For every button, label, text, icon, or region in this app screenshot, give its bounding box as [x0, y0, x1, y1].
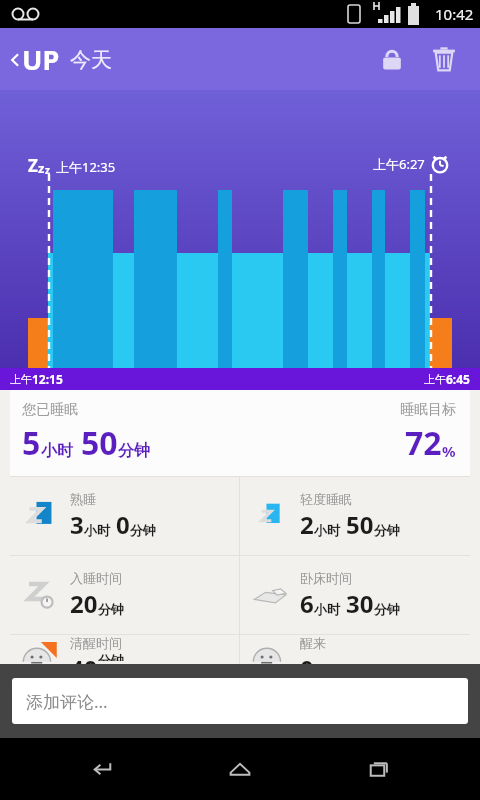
button[interactable]: Recents [343, 738, 413, 800]
staticText: UP [22, 41, 60, 78]
staticText: 72 [405, 421, 442, 465]
staticText: 上午 [424, 372, 446, 386]
button[interactable]: 熟睡 [10, 477, 239, 555]
staticText: 分钟 [130, 522, 156, 538]
button[interactable]: 清醒时间 [10, 635, 239, 664]
staticText: 分钟 [374, 522, 400, 538]
button[interactable]: 添加评论... [12, 678, 468, 724]
staticText: 分钟 [98, 652, 124, 661]
staticText: 卧床时间 [300, 570, 352, 586]
staticText: 0 [300, 652, 314, 664]
staticText: 40 [70, 652, 98, 664]
button[interactable]: 卧床时间 [240, 556, 470, 634]
staticText: z [38, 159, 45, 177]
staticText: 小时 [314, 601, 340, 617]
staticText: 小时 [84, 522, 110, 538]
staticText: 睡眠目标 [400, 401, 456, 419]
staticText: 6:45 [446, 371, 470, 387]
staticText: 熟睡 [70, 491, 96, 507]
staticText: 清醒时间 [70, 635, 122, 651]
button[interactable]: 您已睡眠 [10, 390, 470, 476]
staticText: 20 [70, 587, 98, 620]
staticText: 10:42 [435, 4, 474, 24]
staticText: 分钟 [118, 441, 150, 461]
staticText: 分钟 [374, 601, 400, 617]
staticText: 3 [70, 508, 84, 541]
button[interactable]: Back [68, 738, 138, 800]
staticText: 50 [81, 421, 118, 465]
staticText: z [45, 163, 50, 177]
staticText: 上午6:27 [373, 155, 425, 173]
staticText: 小时 [314, 522, 340, 538]
staticText: 上午 [10, 372, 32, 386]
button[interactable]: UP [0, 41, 120, 78]
staticText: 6 [300, 587, 314, 620]
staticText: Z [28, 154, 38, 177]
staticText: 12:15 [32, 371, 63, 387]
staticText: 小时 [41, 441, 73, 461]
staticText: 2 [300, 508, 314, 541]
button[interactable]: 醒来 [240, 635, 470, 664]
button[interactable]: 轻度睡眠 [240, 477, 470, 555]
staticText: 上午12:35 [56, 158, 116, 176]
staticText: 您已睡眠 [22, 401, 78, 419]
staticText: 醒来 [300, 635, 326, 651]
button[interactable]: 入睡时间 [10, 556, 239, 634]
button[interactable]: Home [205, 738, 275, 800]
staticText: 5 [22, 421, 41, 465]
button[interactable]: Lock [366, 33, 418, 85]
staticText: 分钟 [98, 601, 124, 617]
staticText: 50 [346, 508, 374, 541]
staticText: % [442, 441, 456, 461]
staticText: 30 [346, 587, 374, 620]
staticText: 添加评论... [26, 690, 108, 713]
staticText: 0 [116, 508, 130, 541]
staticText: 今天 [70, 47, 112, 73]
button[interactable]: Delete [418, 33, 470, 85]
staticText: 轻度睡眠 [300, 491, 352, 507]
staticText: 入睡时间 [70, 570, 122, 586]
